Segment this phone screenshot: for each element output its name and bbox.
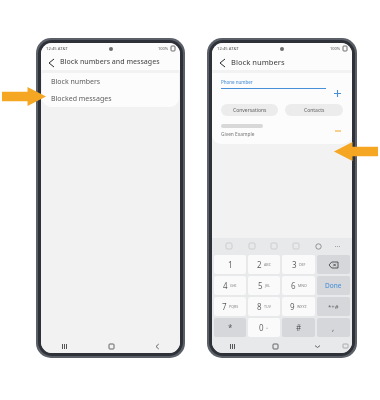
button[interactable]: Conversations [221, 104, 278, 116]
button[interactable]: 1 [214, 255, 246, 274]
staticText: 0 [259, 322, 264, 333]
button[interactable]: Blocked messages [42, 90, 179, 107]
staticText: GHI [230, 283, 237, 288]
staticText: Block numbers and messages [60, 57, 160, 67]
staticText: 12:45 AT&T [46, 46, 68, 52]
button[interactable]: 2 [248, 255, 280, 274]
button[interactable]: *+# [317, 297, 350, 316]
staticText: Given Example [221, 131, 255, 138]
button[interactable]: Back [46, 57, 57, 68]
button[interactable]: Contacts [285, 104, 343, 116]
button[interactable]: # [282, 318, 315, 337]
button[interactable]: Remove [333, 126, 343, 136]
button[interactable]: 4 [214, 276, 246, 295]
button[interactable]: , [317, 318, 350, 337]
button[interactable]: 9 [282, 297, 315, 316]
staticText: 7 [222, 301, 227, 312]
button[interactable]: 5 [248, 276, 280, 295]
staticText: Contacts [304, 107, 325, 114]
staticText: , [332, 322, 335, 333]
button[interactable]: 6 [282, 276, 315, 295]
staticText: 1 [228, 259, 233, 270]
button[interactable]: 0 [248, 318, 280, 337]
staticText: 9 [290, 301, 295, 312]
button[interactable]: 3 [282, 255, 315, 274]
staticText: *+# [328, 303, 339, 311]
staticText: MNO [298, 283, 307, 288]
staticText: WXYZ [297, 304, 307, 309]
staticText: + [266, 325, 269, 330]
staticText: 8 [257, 301, 262, 312]
button[interactable]: Recents [41, 339, 88, 353]
staticText: Block numbers [231, 57, 285, 67]
button[interactable]: Back [217, 57, 228, 68]
button[interactable]: Voice input [285, 238, 307, 254]
staticText: Blocked messages [51, 94, 112, 104]
button[interactable]: Back [134, 339, 180, 353]
button[interactable]: Add number [332, 88, 343, 99]
button[interactable]: More options [329, 238, 347, 254]
staticText: JKL [265, 283, 271, 288]
staticText: # [296, 322, 302, 333]
staticText: 100% [330, 46, 341, 51]
button[interactable]: * [214, 318, 246, 337]
button[interactable]: Clipboard [263, 238, 285, 254]
button[interactable]: Given Example [221, 124, 343, 138]
staticText: TUV [264, 304, 271, 309]
button[interactable]: GIF [240, 238, 263, 254]
button[interactable]: Home [254, 339, 296, 353]
staticText: Block numbers [51, 77, 101, 87]
button[interactable]: Delete [317, 255, 350, 274]
staticText: PQRS [229, 304, 239, 309]
staticText: 100% [158, 46, 169, 51]
button[interactable]: Recents [212, 339, 254, 353]
staticText: Done [325, 281, 342, 290]
staticText: 4 [223, 280, 228, 291]
staticText: * [228, 322, 233, 333]
button[interactable]: Done [317, 276, 350, 295]
staticText: Conversations [233, 107, 267, 114]
staticText: DEF [299, 262, 306, 267]
button[interactable]: 8 [248, 297, 280, 316]
button[interactable]: Keyboard settings [307, 238, 329, 254]
staticText: 6 [291, 280, 296, 291]
button[interactable]: Hide keyboard [296, 339, 338, 353]
button[interactable]: Sticker [217, 238, 240, 254]
staticText: 2 [257, 259, 262, 270]
button[interactable]: Keyboard [338, 339, 352, 353]
button[interactable]: 7 [214, 297, 246, 316]
staticText: 12:45 AT&T [217, 46, 239, 52]
staticText: Phone number [221, 79, 253, 85]
staticText: 3 [292, 259, 297, 270]
button[interactable]: Home [88, 339, 134, 353]
button[interactable]: Block numbers [42, 73, 179, 90]
staticText: 5 [258, 280, 263, 291]
staticText: ABC [264, 262, 271, 267]
